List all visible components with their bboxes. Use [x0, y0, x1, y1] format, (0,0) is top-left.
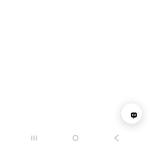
button[interactable]: Home	[67, 130, 83, 146]
button[interactable]: Back	[108, 130, 124, 146]
button[interactable]: Recent apps	[26, 130, 42, 146]
button[interactable]: Assistant	[121, 103, 142, 124]
